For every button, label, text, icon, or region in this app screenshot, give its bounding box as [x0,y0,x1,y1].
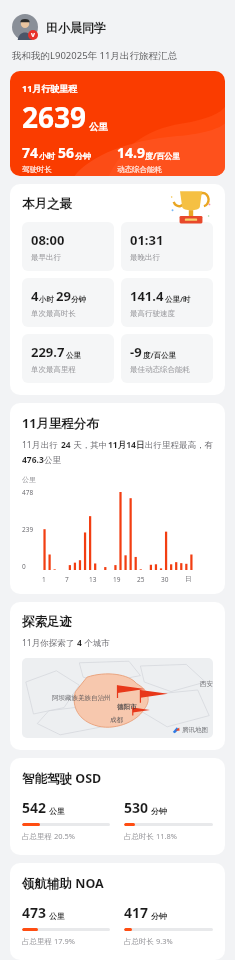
staticText: 占总时长 11.8% [124,831,178,841]
staticText: 542 [22,798,47,817]
staticText: 小时 [39,151,55,161]
staticText: 单次最高里程 [31,365,76,374]
staticText: 度/百公里 [145,150,181,161]
staticText: 最晚出行 [130,253,160,262]
staticText: 30 [161,575,169,584]
staticText: 动态综合能耗 [117,165,162,174]
button[interactable]: 229.7 [22,334,114,383]
staticText: 29 [56,287,71,305]
staticText: 出行里程最高，有 [145,440,213,451]
staticText: 141.4 [130,287,164,305]
staticText: 14.9 [117,143,145,162]
staticText: V [31,31,35,39]
button[interactable]: 141.4 [121,278,213,327]
staticText: 占总里程 17.9% [22,936,76,946]
staticText: 占总里程 20.5% [22,831,76,841]
staticText: 分钟 [75,151,91,161]
staticText: 成都 [110,716,123,724]
staticText: 229.7 [31,343,65,361]
staticText: 530 [124,798,149,817]
staticText: 智能驾驶 OSD [22,770,102,787]
button[interactable]: 530 [124,798,213,841]
staticText: 最佳动态综合能耗 [130,365,190,374]
staticText: 公里/时 [165,294,191,304]
staticText: 11月14日 [108,439,145,451]
staticText: 239 [22,525,34,534]
staticText: 25 [137,575,145,584]
staticText: 公里 [44,455,61,466]
staticText: 478 [22,488,34,497]
staticText: 24 [61,439,71,451]
staticText: 公里 [49,806,65,816]
staticText: 0 [22,562,26,571]
staticText: 74 [22,143,39,162]
staticText: 天，其中 [71,439,108,451]
staticText: 7 [65,575,69,584]
staticText: 公里 [89,121,108,133]
staticText: 阿坝藏族羌族自治州 [52,694,111,702]
staticText: 08:00 [31,231,65,249]
staticText: 最高行驶速度 [130,309,175,318]
staticText: 驾驶时长 [22,165,52,174]
staticText: 473 [22,903,47,922]
staticText: 11月 [22,439,41,451]
staticText: -9 [130,343,142,361]
button[interactable]: 08:00 [22,222,114,271]
button[interactable]: 542 [22,798,110,841]
staticText: 探索足迹 [22,614,72,630]
staticText: 田小晨同学 [46,20,106,35]
staticText: 领航辅助 NOA [22,875,104,892]
staticText: 最早出行 [31,253,61,262]
staticText: 分钟 [151,806,167,816]
staticText: 11月里程分布 [22,415,99,432]
staticText: 1 [42,575,46,584]
staticText: 01:31 [130,231,164,249]
button[interactable]: 11月行驶里程 [10,71,225,176]
staticText: 日 [185,575,192,583]
other: Trophy [169,186,213,230]
button[interactable]: 417 [124,903,213,946]
staticText: 417 [124,903,149,922]
button[interactable]: 473 [22,903,110,946]
staticText: 德阳市 [117,703,137,711]
staticText: 11月行驶里程 [22,82,78,94]
button[interactable]: 4 [22,278,114,327]
staticText: 个城市 [82,637,110,649]
staticText: 11月你探索了 [22,637,77,649]
staticText: 西安 [200,680,213,688]
staticText: 本月之最 [22,196,72,212]
staticText: 分钟 [71,295,86,304]
staticText: 2639 [22,98,87,136]
staticText: 占总时长 9.3% [124,936,173,946]
staticText: 分钟 [151,911,167,921]
staticText: 度/百公里 [143,350,177,360]
staticText: 出行 [41,439,61,451]
staticText: 我和我的L902025年 11月出行旅程汇总 [12,49,177,62]
staticText: 腾讯地图 [182,726,208,734]
button[interactable]: V [12,14,106,40]
button[interactable]: 01:31 [121,222,213,271]
staticText: 单次最高时长 [31,309,76,318]
staticText: 19 [113,575,121,584]
staticText: 公里 [22,475,36,484]
staticText: 476.3 [22,454,44,466]
staticText: 4 [77,637,82,649]
button[interactable]: -9 [121,334,213,383]
button[interactable]: Map of explored cities [22,658,213,738]
staticText: 56 [58,143,75,162]
staticText: 公里 [66,351,81,360]
staticText: 公里 [49,911,65,921]
staticText: 小时 [39,295,54,304]
staticText: 4 [31,287,39,305]
staticText: 13 [89,575,97,584]
